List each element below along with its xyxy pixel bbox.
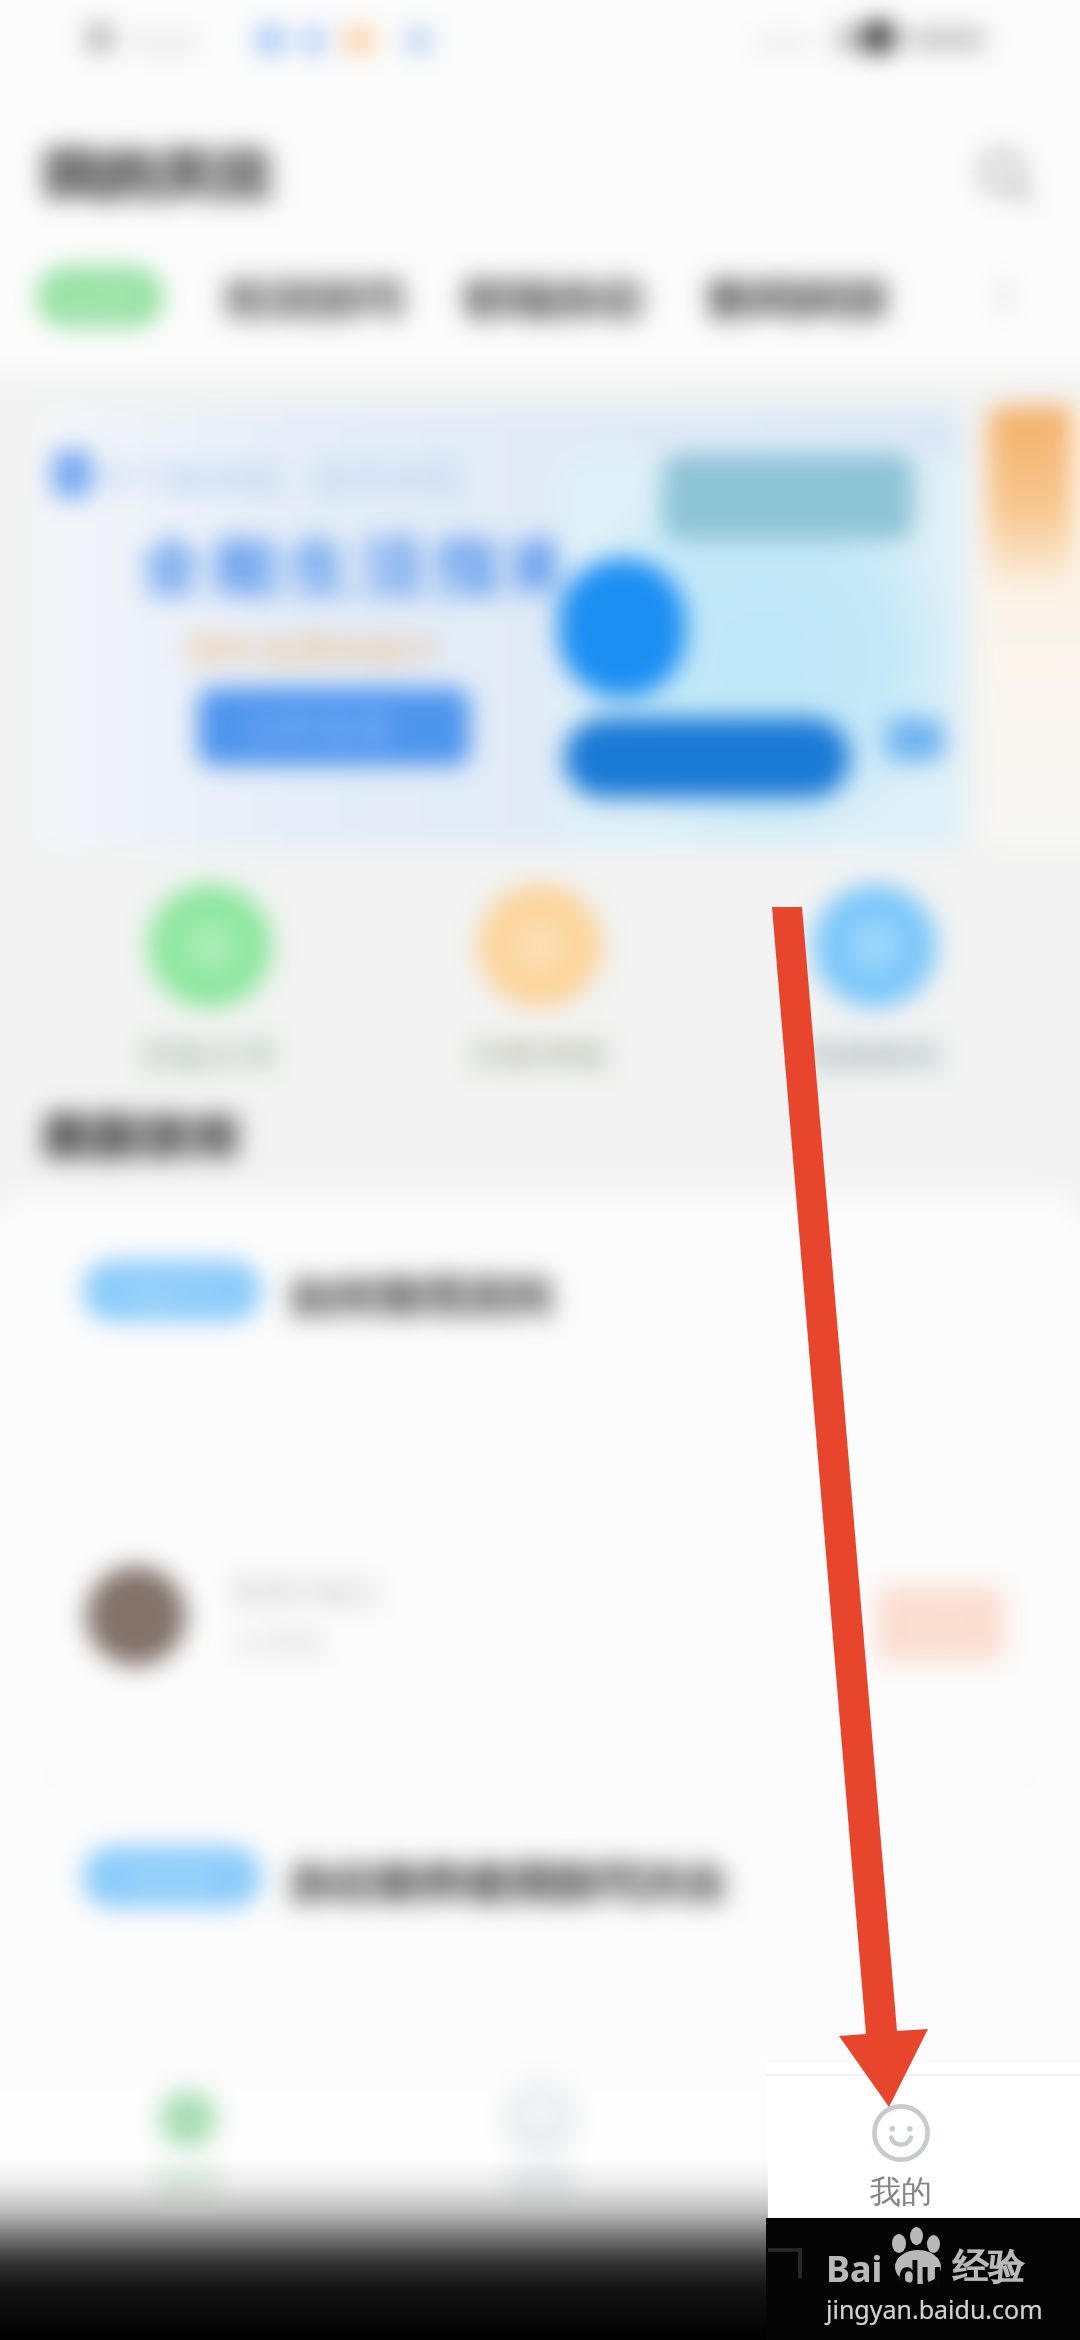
button[interactable]: 热门 bbox=[0, 1194, 1080, 1778]
button[interactable]: 我的 bbox=[788, 2104, 1014, 2216]
staticText: 热门 bbox=[130, 1270, 210, 1320]
staticText: 数码科技 bbox=[710, 273, 890, 330]
staticText: 我的关注 bbox=[42, 141, 274, 212]
staticText: Bai bbox=[826, 2244, 883, 2293]
staticText: 如何整理房间 bbox=[288, 1270, 552, 1325]
button[interactable]: 发现 bbox=[450, 2088, 630, 2212]
staticText: 经验 bbox=[952, 2244, 1024, 2289]
button[interactable]: 经验分享 bbox=[100, 884, 320, 1096]
staticText: du bbox=[898, 2250, 943, 2298]
staticText: 经验分享 bbox=[142, 1034, 278, 1077]
staticText: 我的 bbox=[869, 2162, 931, 2201]
button[interactable]: 关注 bbox=[876, 1586, 1004, 1662]
button[interactable]: Search bbox=[976, 146, 1038, 208]
staticText: 数码科技 bbox=[708, 272, 888, 329]
staticText: 办公软件使用技巧大全 bbox=[288, 1856, 728, 1911]
staticText: 全部 bbox=[60, 278, 136, 326]
staticText: jingyan.baidu.com bbox=[826, 2292, 1043, 2326]
staticText: 问答求助 bbox=[472, 1034, 608, 1077]
button[interactable]: 职场办公 bbox=[464, 264, 654, 328]
button[interactable]: 推荐 bbox=[0, 1780, 1080, 2078]
staticText: 最新发布 bbox=[40, 1106, 240, 1169]
button[interactable]: 学习新技能，提升自我 bbox=[38, 406, 964, 850]
button[interactable]: 首页 bbox=[98, 2088, 278, 2212]
button[interactable]: 我的关注 bbox=[40, 134, 292, 212]
button[interactable]: 全部 bbox=[36, 266, 164, 328]
staticText: 发现 bbox=[509, 2162, 571, 2201]
staticText: 如何整理房间 bbox=[290, 1271, 554, 1326]
button[interactable]: 数码科技 bbox=[708, 264, 898, 328]
button[interactable]: 问答求助 bbox=[430, 884, 650, 1096]
staticText: 生活技巧 bbox=[224, 272, 404, 329]
staticText: 办公软件使用技巧大全 bbox=[290, 1857, 730, 1912]
staticText: 生活技巧 bbox=[226, 273, 406, 330]
staticText: 推荐 bbox=[130, 1856, 210, 1906]
staticText: 职场办公 bbox=[466, 273, 646, 330]
staticText: 立即查看 bbox=[242, 706, 394, 754]
staticText: 职场办公 bbox=[464, 272, 644, 329]
staticText: 学习新技能，提升自我 bbox=[98, 456, 458, 501]
button[interactable]: 生活技巧 bbox=[224, 264, 414, 328]
button[interactable]: 视频教程 bbox=[765, 884, 985, 1096]
staticText: 限时免费体验中 bbox=[188, 628, 440, 673]
staticText: 我的关注 bbox=[40, 140, 272, 211]
staticText: 首页 bbox=[157, 2162, 219, 2201]
staticText: 全能生活指南 bbox=[134, 528, 578, 609]
staticText: 视频教程 bbox=[807, 1034, 943, 1077]
staticText: 我的 bbox=[870, 2172, 932, 2211]
staticText: 最新发布 bbox=[42, 1107, 242, 1170]
staticText: 生活小达人 bbox=[232, 1572, 382, 1610]
button[interactable]: 我的 bbox=[810, 2088, 990, 2212]
